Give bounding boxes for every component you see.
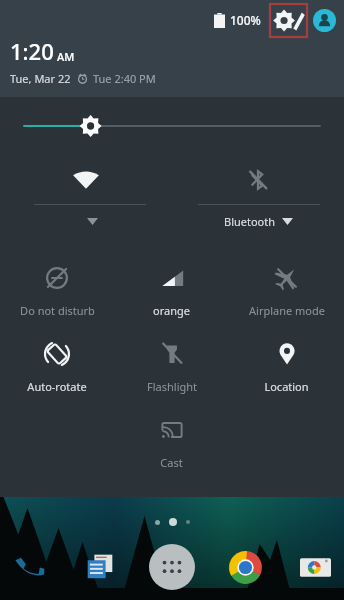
- button[interactable]: Chrome: [224, 546, 266, 588]
- button[interactable]: Bluetooth: [172, 159, 344, 239]
- staticText: Auto-rotate: [27, 379, 87, 394]
- staticText: Cast: [160, 455, 183, 470]
- button[interactable]: Auto-rotate: [0, 331, 114, 407]
- button[interactable]: Airplane mode: [229, 255, 344, 331]
- button[interactable]: orange: [114, 255, 229, 331]
- button[interactable]: Settings: [270, 4, 307, 37]
- staticText: Bluetooth: [224, 214, 276, 229]
- other: Battery: [214, 13, 225, 28]
- staticText: Airplane mode: [249, 303, 325, 318]
- staticText: 100%: [230, 12, 261, 28]
- button[interactable]: Messages: [79, 546, 121, 588]
- staticText: Location: [264, 379, 309, 394]
- staticText: orange: [153, 303, 190, 318]
- staticText: Do not disturb: [20, 303, 95, 318]
- staticText: AM: [57, 49, 75, 64]
- button[interactable]: Location: [229, 331, 344, 407]
- staticText: Flashlight: [147, 379, 197, 394]
- button[interactable]: Brightness: [0, 107, 344, 145]
- button[interactable]: Cast: [114, 407, 229, 483]
- button[interactable]: Wi-Fi: [0, 159, 172, 239]
- button[interactable]: Flashlight: [114, 331, 229, 407]
- button[interactable]: Do not disturb: [0, 255, 114, 331]
- button[interactable]: User profile: [313, 9, 336, 32]
- button[interactable]: All apps: [149, 544, 195, 590]
- staticText: Tue, Mar 22: [10, 71, 71, 86]
- staticText: Tue 2:40 PM: [93, 71, 156, 86]
- button[interactable]: Camera: [294, 546, 336, 588]
- button[interactable]: Phone: [8, 546, 50, 588]
- staticText: 1:20: [10, 36, 54, 66]
